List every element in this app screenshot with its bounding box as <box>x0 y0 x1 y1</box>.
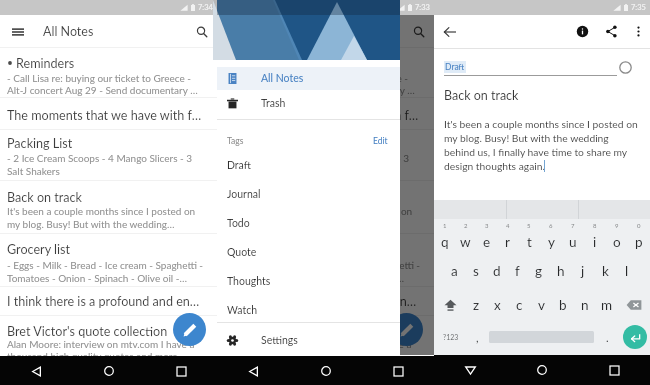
staticText: Grocery list <box>7 242 71 257</box>
button[interactable]: Bret Victor's quote collection <box>217 323 434 339</box>
staticText: thousand high quality quotes and more <box>224 350 395 362</box>
button[interactable]: Back <box>217 356 290 385</box>
button[interactable]: Recent apps <box>145 356 217 385</box>
button[interactable]: h <box>550 260 572 282</box>
button[interactable]: s <box>465 260 486 282</box>
staticText: Alan Moore: interview on mtv.com I have … <box>7 338 195 350</box>
button[interactable]: j <box>572 260 594 282</box>
staticText: 8 <box>593 222 597 229</box>
button[interactable]: Packing List <box>217 135 434 151</box>
button[interactable]: 1 <box>434 222 455 250</box>
staticText: behind us, I finally have time to share … <box>444 146 628 158</box>
staticText: 0 <box>637 222 641 229</box>
button[interactable]: Draft <box>445 61 465 73</box>
staticText: ?123 <box>443 333 459 341</box>
button[interactable]: The moments that we have with f… <box>217 107 434 123</box>
button[interactable]: 3 <box>476 222 497 250</box>
button[interactable]: Share <box>597 15 626 48</box>
staticText: i <box>593 234 597 250</box>
staticText: Salt Shakers <box>224 165 277 177</box>
staticText: Thoughts <box>227 275 271 288</box>
button[interactable]: m <box>596 294 618 316</box>
button[interactable]: l <box>616 260 638 282</box>
staticText: 6 <box>549 222 553 229</box>
button[interactable]: x <box>487 294 508 316</box>
button[interactable]: Trash <box>217 90 400 117</box>
button[interactable]: c <box>508 294 530 316</box>
button[interactable]: Enter <box>623 325 647 349</box>
button[interactable]: 9 <box>606 222 628 250</box>
button[interactable]: b <box>552 294 574 316</box>
button[interactable]: Pin note <box>619 61 632 74</box>
button[interactable]: f <box>507 260 528 282</box>
button[interactable]: All Notes <box>217 67 400 90</box>
staticText: Todo <box>227 217 250 230</box>
staticText: 4 <box>506 222 510 229</box>
staticText: Reminders <box>16 56 75 71</box>
button[interactable]: Home <box>290 356 362 385</box>
button[interactable]: z <box>466 294 487 316</box>
button[interactable]: Thoughts <box>217 271 400 291</box>
staticText: Back on track <box>224 190 299 205</box>
staticText: Back on track <box>444 88 519 103</box>
button[interactable]: Quote <box>217 242 400 262</box>
button[interactable]: n <box>574 294 596 316</box>
button[interactable]: Create note <box>173 313 206 346</box>
button[interactable]: Watch <box>217 300 400 320</box>
staticText: Tags <box>227 136 244 146</box>
button[interactable]: Recent apps <box>362 356 434 385</box>
button[interactable]: 6 <box>540 222 562 250</box>
button[interactable]: Home <box>73 356 145 385</box>
button[interactable]: Back on track <box>0 189 217 205</box>
button[interactable]: Open navigation drawer <box>0 15 36 48</box>
button[interactable]: Settings <box>217 326 400 354</box>
button[interactable]: Backspace <box>618 294 650 316</box>
button[interactable]: Back on track <box>217 189 434 205</box>
button[interactable]: a <box>444 260 465 282</box>
button[interactable]: More options <box>626 15 650 48</box>
button[interactable]: , <box>470 324 484 350</box>
button[interactable]: Grocery list <box>217 241 434 257</box>
button[interactable]: . <box>600 324 614 350</box>
button[interactable]: I think there is a profound and en… <box>217 293 434 309</box>
staticText: It's been a couple months since I posted… <box>7 205 196 217</box>
button[interactable]: Reminders <box>217 55 434 71</box>
button[interactable]: Todo <box>217 213 400 233</box>
button[interactable]: Journal <box>217 184 400 204</box>
button[interactable]: I think there is a profound and en… <box>0 293 217 309</box>
button[interactable]: 4 <box>497 222 518 250</box>
staticText: Salt Shakers <box>7 165 60 177</box>
button[interactable]: Bret Victor's quote collection <box>0 323 217 339</box>
button[interactable]: 7 <box>562 222 584 250</box>
button[interactable]: Back <box>434 15 466 48</box>
button[interactable]: g <box>528 260 550 282</box>
staticText: my blog. Busy! But with the wedding <box>444 132 609 144</box>
staticText: b <box>559 297 567 313</box>
button[interactable]: 0 <box>628 222 650 250</box>
button[interactable]: Packing List <box>0 135 217 151</box>
button[interactable]: Recent apps <box>578 355 650 385</box>
button[interactable]: The moments that we have with f… <box>0 107 217 123</box>
button[interactable]: v <box>530 294 552 316</box>
button[interactable]: Reminders <box>0 55 217 71</box>
button[interactable]: Hide keyboard <box>434 355 506 385</box>
staticText: my blog. Busy! But with the wedding… <box>7 218 175 230</box>
button[interactable]: Draft <box>217 155 400 175</box>
button[interactable]: Edit <box>371 134 390 148</box>
button[interactable]: ?123 <box>438 324 463 350</box>
button[interactable]: Back <box>0 356 73 385</box>
button[interactable]: Note info <box>568 15 597 48</box>
staticText: 5 <box>527 222 531 229</box>
staticText: c <box>516 297 523 313</box>
staticText: 3 <box>485 222 489 229</box>
button[interactable]: 2 <box>455 222 476 250</box>
button[interactable]: Shift <box>434 294 466 316</box>
button[interactable]: d <box>486 260 507 282</box>
button[interactable]: 8 <box>584 222 606 250</box>
button[interactable]: Home <box>506 355 578 385</box>
button[interactable]: k <box>594 260 616 282</box>
button[interactable]: Search <box>187 15 217 48</box>
button[interactable]: Grocery list <box>0 241 217 257</box>
button[interactable]: 5 <box>518 222 540 250</box>
